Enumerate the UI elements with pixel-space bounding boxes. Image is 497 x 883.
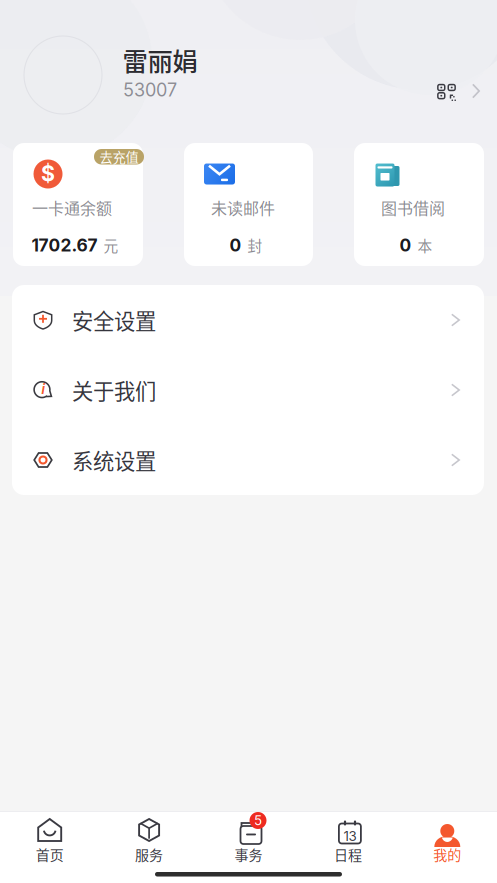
- staticText: 封: [247, 234, 262, 256]
- button[interactable]: 系统设置: [12, 425, 484, 495]
- staticText: 服务: [135, 844, 163, 864]
- staticText: 图书借阅: [381, 196, 445, 219]
- staticText: 首页: [36, 844, 64, 864]
- staticText: 日程: [334, 844, 362, 864]
- staticText: 0: [229, 235, 241, 256]
- staticText: 1702.67: [31, 235, 97, 256]
- staticText: 本: [417, 234, 432, 256]
- staticText: 事务: [234, 844, 262, 864]
- staticText: 未读邮件: [211, 196, 275, 219]
- button[interactable]: 5: [199, 817, 298, 878]
- staticText: 安全设置: [72, 305, 156, 335]
- staticText: 一卡通余额: [32, 196, 112, 219]
- staticText: 5: [254, 812, 262, 828]
- button[interactable]: $: [13, 143, 143, 266]
- staticText: 13: [343, 828, 356, 844]
- staticText: 关于我们: [72, 375, 156, 405]
- button[interactable]: 首页: [0, 817, 99, 878]
- button[interactable]: 扫一扫: [422, 69, 489, 105]
- button[interactable]: i: [12, 355, 484, 425]
- staticText: 0: [399, 235, 411, 256]
- button[interactable]: 未读邮件: [184, 143, 313, 266]
- staticText: 去充值: [99, 147, 138, 166]
- staticText: 系统设置: [72, 445, 156, 475]
- button[interactable]: 13: [298, 817, 398, 878]
- staticText: 53007: [123, 79, 177, 101]
- staticText: 我的: [433, 844, 461, 864]
- staticText: i: [41, 380, 45, 397]
- button[interactable]: 图书借阅: [354, 143, 484, 266]
- button[interactable]: 服务: [99, 817, 199, 878]
- button[interactable]: 安全设置: [12, 285, 484, 355]
- button[interactable]: 我的: [398, 817, 497, 878]
- staticText: 雷丽娟: [122, 42, 197, 78]
- staticText: 元: [103, 234, 118, 256]
- staticText: $: [41, 161, 55, 186]
